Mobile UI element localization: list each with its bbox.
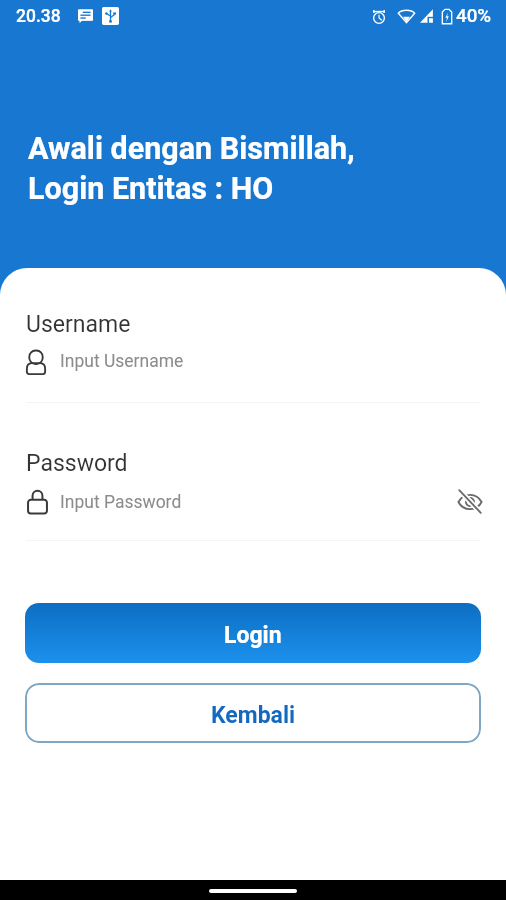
staticText: 20.38 xyxy=(16,6,61,27)
staticText: Input Password xyxy=(60,492,182,513)
staticText: Kembali xyxy=(211,702,296,729)
button[interactable]: Kembali xyxy=(25,683,481,743)
staticText: 40% xyxy=(456,5,492,27)
button[interactable]: Login xyxy=(25,603,481,663)
staticText: Awali dengan Bismillah, xyxy=(28,131,355,167)
staticText: Input Username xyxy=(60,351,184,372)
button[interactable]: Input Password field xyxy=(0,487,506,519)
button[interactable]: Show password xyxy=(451,482,489,520)
button[interactable]: Input Username field xyxy=(0,346,506,378)
staticText: Username xyxy=(26,311,131,338)
staticText: Login xyxy=(224,622,282,649)
staticText: Password xyxy=(26,450,128,477)
staticText: Login Entitas : HO xyxy=(28,171,274,207)
